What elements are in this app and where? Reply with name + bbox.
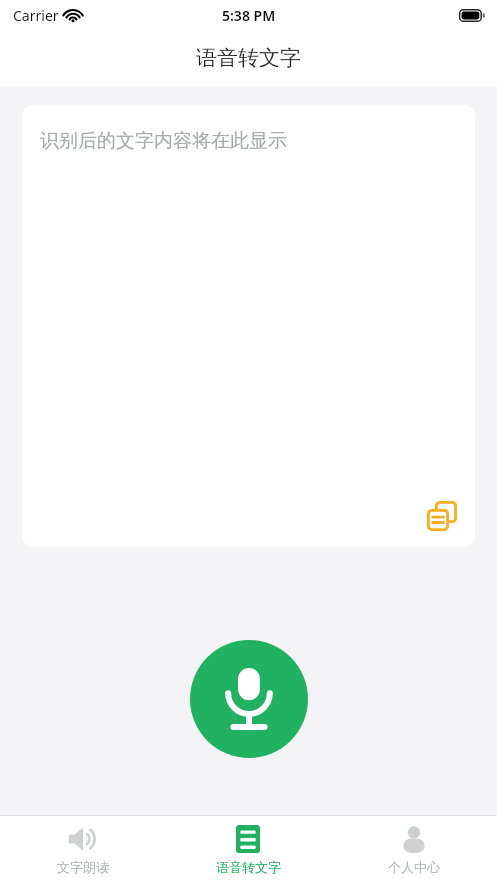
button[interactable]: Copy text	[423, 497, 461, 535]
staticText: 5:38 PM	[222, 6, 276, 25]
staticText: Carrier	[13, 6, 59, 25]
staticText: 识别后的文字内容将在此显示	[40, 129, 287, 153]
staticText: 语音转文字	[216, 859, 281, 875]
button[interactable]: 文字朗读	[0, 815, 165, 883]
staticText: 语音转文字	[196, 45, 301, 71]
staticText: 个人中心	[388, 859, 440, 875]
staticText: 文字朗读	[57, 859, 109, 875]
button[interactable]: 识别后的文字内容将在此显示	[22, 105, 475, 547]
button[interactable]: 个人中心	[331, 815, 497, 883]
button[interactable]: 语音转文字	[165, 815, 331, 883]
button[interactable]: Start recording	[190, 640, 308, 758]
